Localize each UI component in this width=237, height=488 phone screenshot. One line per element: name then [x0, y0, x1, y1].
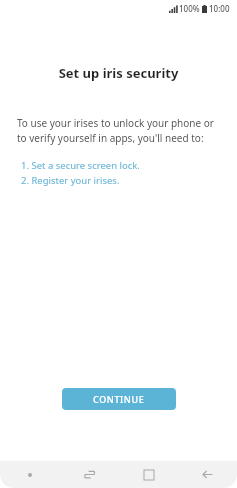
staticText: 10:00 [209, 3, 230, 14]
button[interactable]: Menu indicator [0, 461, 60, 488]
button[interactable]: Recents [60, 461, 119, 488]
staticText: To use your irises to unlock your phone … [17, 116, 223, 145]
staticText: 100% [179, 3, 200, 14]
button[interactable]: CONTINUE [62, 388, 176, 410]
button[interactable]: Back [178, 461, 237, 488]
button[interactable]: Home [119, 461, 178, 488]
staticText: Set up iris security [0, 64, 237, 82]
staticText: CONTINUE [93, 393, 145, 405]
button[interactable]: 1. Set a secure screen lock. [21, 159, 140, 172]
button[interactable]: 2. Register your irises. [21, 174, 120, 187]
